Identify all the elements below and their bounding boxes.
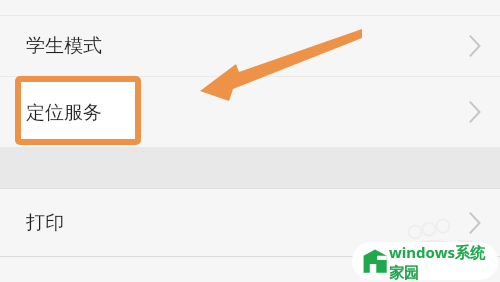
staticText: 学生模式 — [26, 34, 102, 58]
staticText: 定位服务 — [26, 100, 102, 124]
staticText: 打印 — [26, 211, 64, 235]
button[interactable]: 打印 — [0, 189, 500, 256]
button[interactable]: 学生模式 — [0, 16, 500, 76]
button[interactable]: 定位服务 — [0, 77, 500, 147]
staticText: windows系统家园 — [389, 242, 498, 280]
staticText: 定位服务 — [26, 101, 102, 125]
